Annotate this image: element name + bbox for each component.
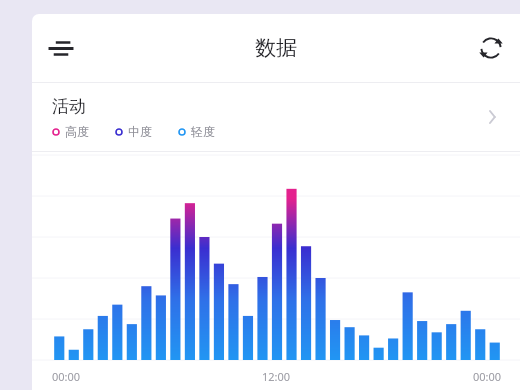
staticText: 00:00 — [52, 369, 81, 384]
staticText: 轻度 — [191, 124, 215, 139]
staticText: 高度 — [65, 124, 89, 139]
button[interactable]: Refresh — [468, 25, 514, 71]
staticText: 数据 — [255, 35, 297, 61]
button[interactable]: Menu — [38, 25, 84, 71]
staticText: 12:00 — [262, 369, 291, 384]
button[interactable]: 活动 — [32, 83, 520, 151]
staticText: 中度 — [128, 124, 152, 139]
staticText: 活动 — [52, 96, 86, 117]
staticText: 00:00 — [473, 369, 502, 384]
